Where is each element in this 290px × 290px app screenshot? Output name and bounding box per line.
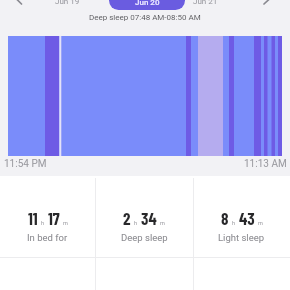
- button[interactable]: 11: [0, 176, 95, 243]
- staticText: 11:54 PM: [4, 158, 47, 170]
- staticText: Jun 20: [135, 0, 160, 7]
- staticText: Deep sleep 07:48 AM-08:50 AM: [89, 13, 201, 22]
- staticText: 11:13 AM: [244, 158, 287, 170]
- button[interactable]: 8: [193, 176, 290, 243]
- staticText: 17: [48, 208, 60, 228]
- staticText: h: [232, 220, 236, 226]
- button[interactable]: 2: [95, 176, 193, 243]
- staticText: Deep sleep: [121, 232, 168, 243]
- button[interactable]: Jun 21: [193, 0, 218, 6]
- staticText: m: [258, 220, 263, 226]
- button[interactable]: Jun 20: [109, 0, 185, 10]
- button[interactable]: Jun 19: [55, 0, 80, 6]
- button[interactable]: [260, 0, 274, 10]
- staticText: m: [63, 220, 68, 226]
- staticText: 8: [221, 208, 229, 228]
- staticText: m: [160, 220, 165, 226]
- staticText: 43: [239, 208, 255, 228]
- button[interactable]: [8, 36, 282, 156]
- button[interactable]: [12, 0, 26, 10]
- staticText: h: [134, 220, 138, 226]
- staticText: 11: [28, 208, 38, 228]
- staticText: Light sleep: [218, 232, 265, 243]
- staticText: h: [41, 220, 45, 226]
- staticText: 34: [141, 208, 157, 228]
- staticText: In bed for: [27, 232, 68, 243]
- staticText: 2: [123, 208, 131, 228]
